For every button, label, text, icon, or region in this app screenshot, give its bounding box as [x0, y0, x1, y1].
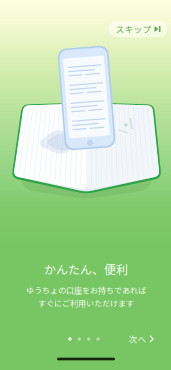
staticText: すぐにご利用いただけます	[38, 297, 134, 309]
button[interactable]: 次へ	[123, 329, 158, 349]
staticText: ゆうちょの口座をお持ちであれば	[26, 284, 146, 296]
button[interactable]: スキップ	[108, 21, 167, 37]
staticText: 次へ	[128, 333, 146, 345]
staticText: スキップ	[115, 23, 151, 35]
staticText: かんたん、便利	[44, 260, 128, 278]
